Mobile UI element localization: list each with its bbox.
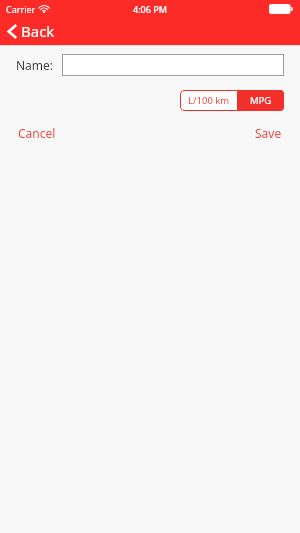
staticText: Cancel [18,125,56,141]
button[interactable]: L/100 km [180,90,237,111]
button[interactable]: Cancel [16,123,58,143]
staticText: Save [255,125,282,141]
button[interactable]: Save [253,123,284,143]
staticText: Name: [16,57,54,73]
staticText: L/100 km [188,94,230,107]
staticText: Back [21,21,55,41]
staticText: 4:06 PM [133,3,167,15]
other: Back [8,24,17,39]
button[interactable]: Back [0,17,65,45]
button[interactable] [62,54,284,76]
staticText: MPG [250,94,272,107]
staticText: Carrier [6,3,36,15]
button[interactable]: MPG [237,90,284,111]
